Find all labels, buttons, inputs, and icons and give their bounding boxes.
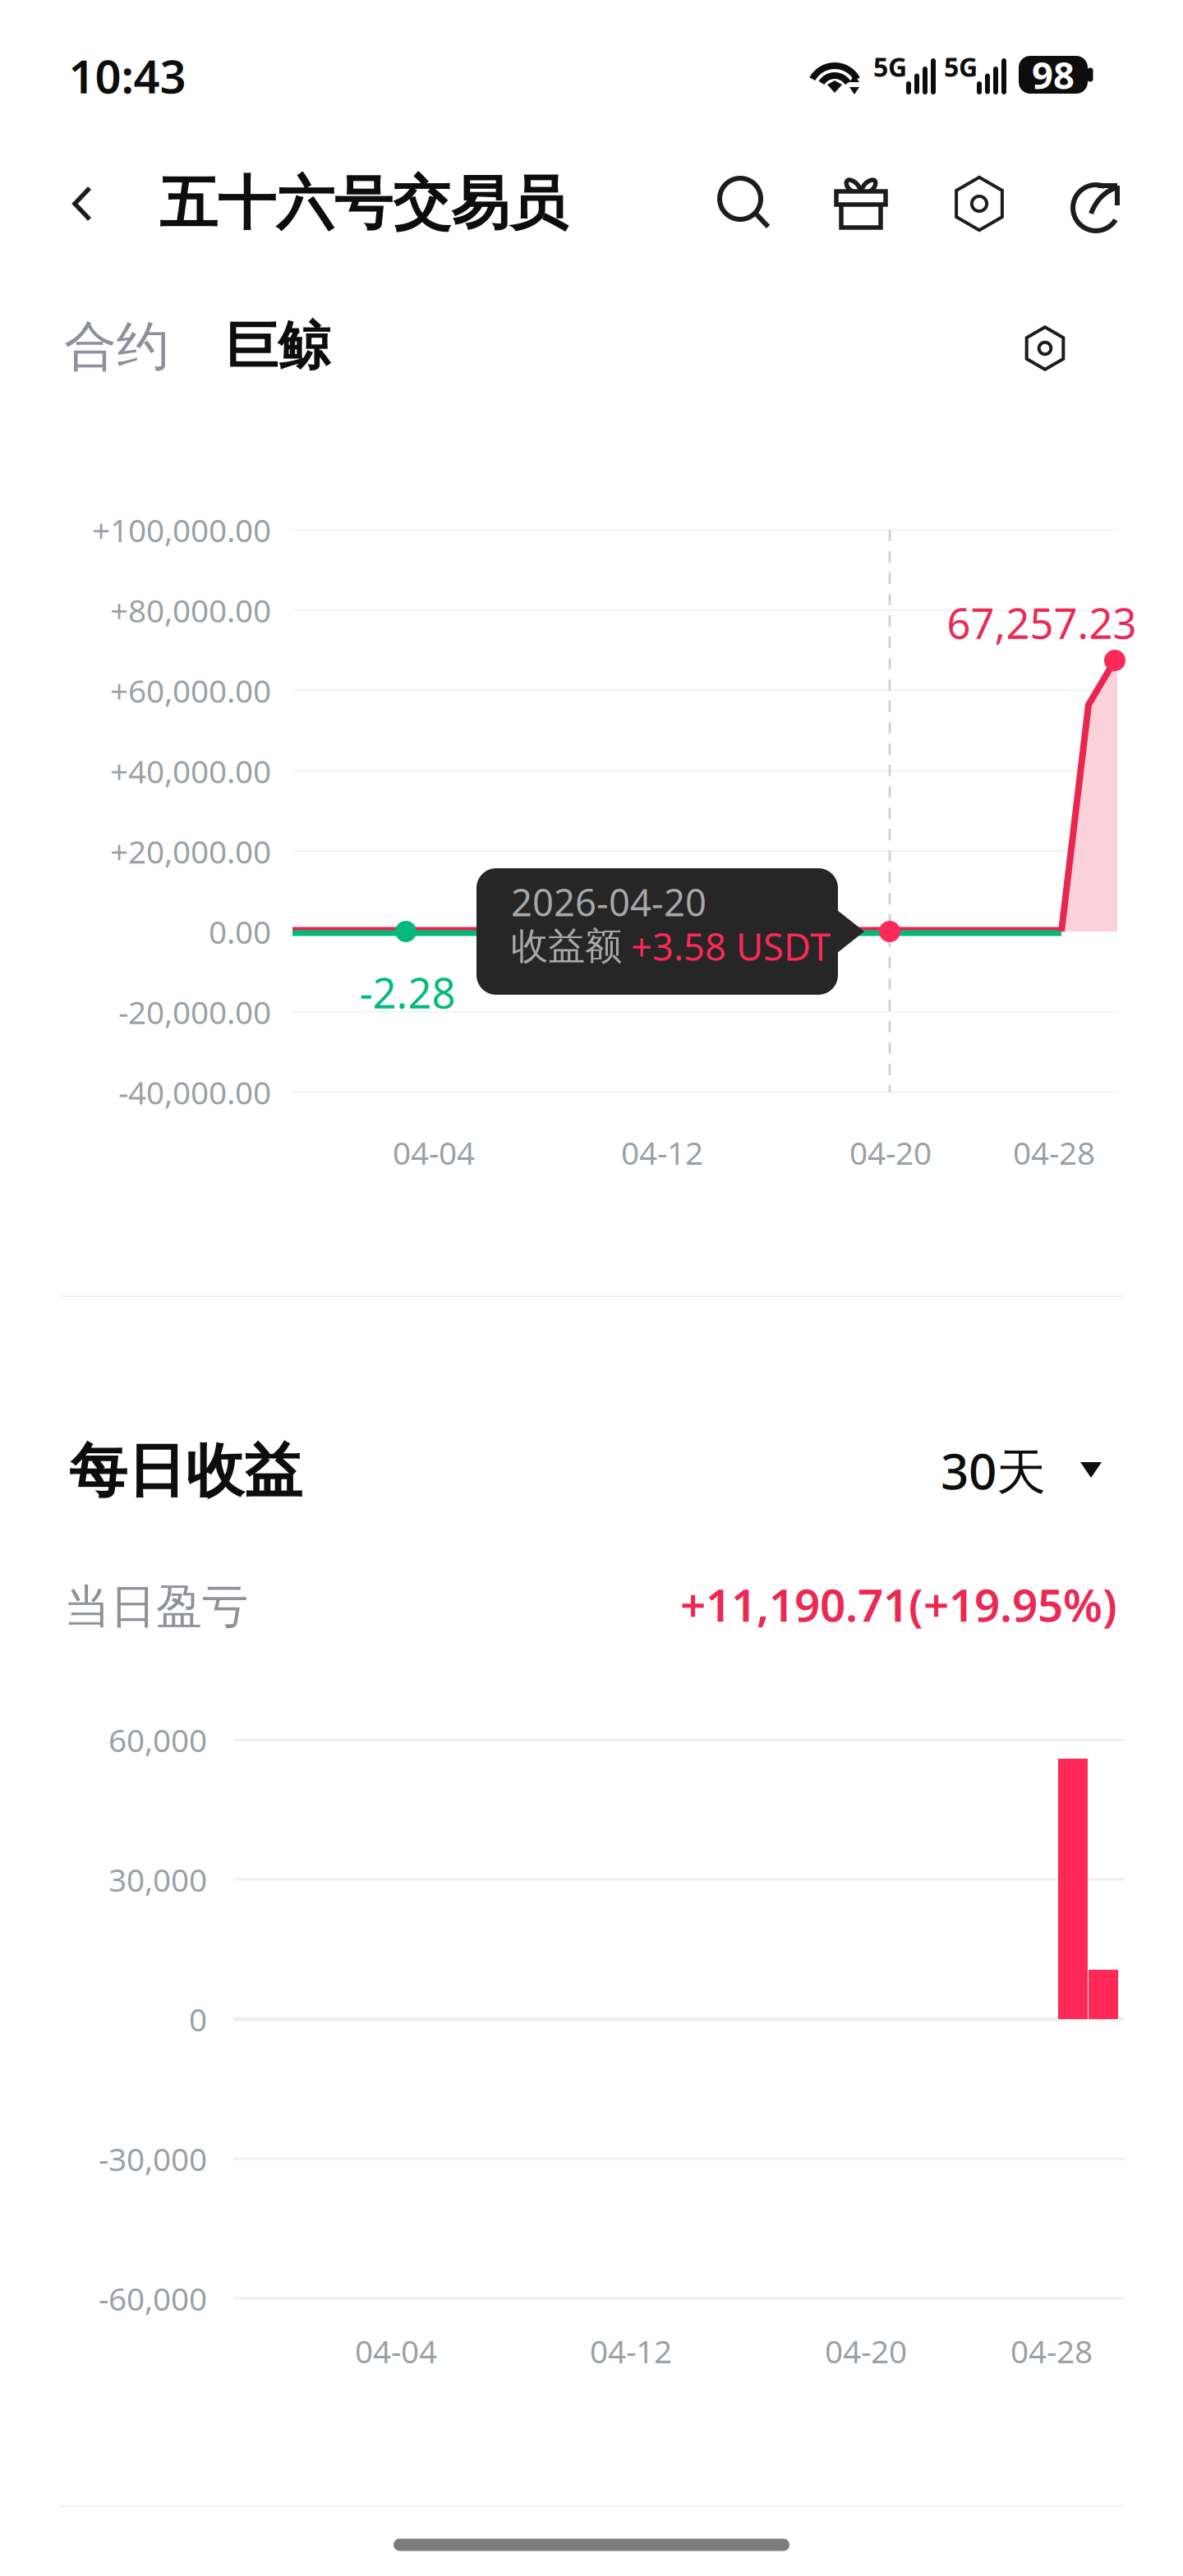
staticText: -60,000 (99, 2277, 207, 2319)
staticText: +100,000.00 (92, 509, 271, 551)
staticText: 04-12 (590, 2330, 672, 2372)
staticText: 五十六号交易员 (159, 168, 568, 239)
staticText: +80,000.00 (110, 589, 271, 631)
staticText: 60,000 (108, 1719, 207, 1761)
button[interactable]: Back (45, 167, 119, 241)
staticText: -30,000 (99, 2138, 207, 2180)
staticText: 2026-04-20 (511, 877, 707, 927)
staticText: 04-04 (393, 1131, 475, 1173)
staticText: 04-28 (1010, 2330, 1093, 2372)
button[interactable]: 30天 (941, 1433, 1121, 1508)
button[interactable]: Share (1062, 168, 1133, 239)
button[interactable]: Rewards (826, 168, 896, 239)
staticText: +20,000.00 (110, 830, 271, 872)
staticText: -20,000.00 (118, 991, 271, 1033)
staticText: 0.00 (209, 910, 271, 953)
staticText: 04-28 (1013, 1131, 1095, 1173)
staticText: +60,000.00 (110, 669, 271, 712)
staticText: -2.28 (359, 965, 456, 1020)
staticText: +40,000.00 (110, 750, 271, 792)
staticText: 5G (944, 49, 978, 84)
staticText: 04-20 (825, 2330, 907, 2372)
staticText: 每日收益 (69, 1436, 302, 1507)
staticText: 30,000 (108, 1858, 207, 1900)
staticText: 5G (873, 49, 907, 84)
button[interactable]: Settings (944, 168, 1015, 239)
staticText: 04-12 (621, 1131, 703, 1173)
staticText: 0 (189, 1998, 207, 2040)
staticText: 30天 (941, 1438, 1046, 1503)
staticText: 04-04 (355, 2330, 437, 2372)
button[interactable]: Chart settings (1012, 315, 1078, 381)
staticText: 合约 (64, 314, 169, 379)
staticText: 67,257.23 (947, 595, 1137, 650)
staticText: +11,190.71(+19.95%) (680, 1574, 1117, 1634)
button[interactable]: 巨鲸 (216, 315, 339, 378)
button[interactable]: Search (709, 168, 780, 239)
staticText: 04-20 (849, 1131, 932, 1173)
staticText: 当日盈亏 (64, 1578, 248, 1635)
staticText: -40,000.00 (118, 1071, 271, 1113)
button[interactable]: 合约 (55, 315, 178, 378)
staticText: 巨鲸 (225, 314, 330, 379)
staticText: 10:43 (69, 45, 186, 106)
staticText: 收益额 (511, 923, 622, 969)
staticText: 98 (1032, 50, 1075, 99)
staticText: +3.58 USDT (631, 922, 831, 971)
